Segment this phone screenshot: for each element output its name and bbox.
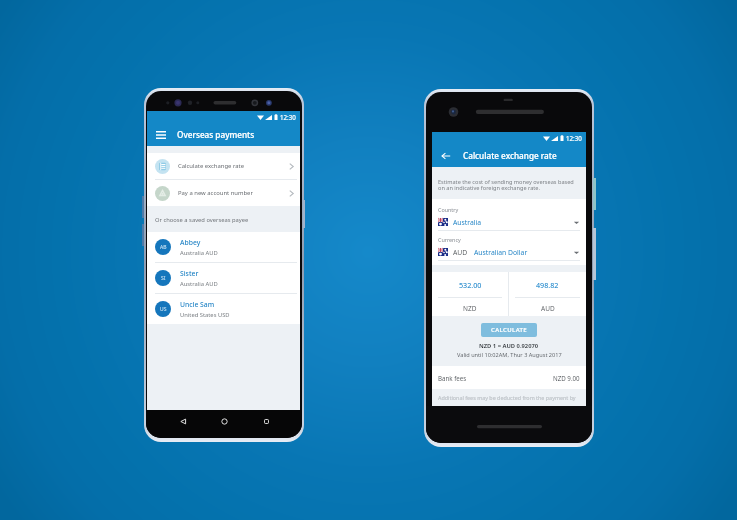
staticText: CALCULATE [491,326,528,334]
button[interactable]: Pay a new account number [147,180,300,206]
staticText: Bank fees [438,374,467,382]
staticText: AUD [453,248,468,257]
staticText: Additional fees may be deducted from the… [438,394,576,401]
staticText: AUD [541,304,555,313]
staticText: 498.82 [536,280,559,290]
button[interactable]: Home [216,413,232,429]
staticText: Calculate exchange rate [178,162,244,170]
staticText: Overseas payments [177,129,255,140]
staticText: Estimate the cost of sending money overs… [438,178,580,192]
button[interactable]: Australia [438,216,580,228]
staticText: NZD [463,304,477,313]
staticText: Australia [453,218,482,227]
button[interactable]: SI [147,263,300,293]
staticText: Australia AUD [180,249,218,257]
button[interactable]: AUD [438,246,580,258]
staticText: AB [160,244,167,251]
button[interactable]: Back [175,413,191,429]
staticText: Uncle Sam [180,300,215,309]
button[interactable]: Recents [258,413,274,429]
staticText: Or choose a saved overseas payee [155,216,249,224]
staticText: SI [161,275,166,282]
staticText: United States USD [180,311,230,319]
staticText: 12:30 [566,134,582,142]
staticText: Country [438,206,459,213]
staticText: 532.00 [459,280,482,290]
staticText: NZD 1 = AUD 0.92070 [479,342,539,350]
staticText: US [160,306,167,313]
staticText: Sister [180,269,199,278]
staticText: Australian Dollar [474,248,528,257]
staticText: Calculate exchange rate [463,150,557,161]
staticText: Valid until 10:02AM, Thur 3 August 2017 [457,351,562,359]
button[interactable]: CALCULATE [481,323,537,337]
staticText: Pay a new account number [178,189,253,197]
staticText: Australia AUD [180,280,218,288]
button[interactable]: Menu [153,127,169,143]
button[interactable]: US [147,294,300,324]
button[interactable]: Calculate exchange rate [147,153,300,179]
staticText: Currency [438,236,461,243]
staticText: 12:30 [280,113,296,121]
button[interactable]: AB [147,232,300,262]
button[interactable]: Back [438,148,454,164]
staticText: NZD 9.00 [553,374,580,382]
staticText: Abbey [180,238,201,247]
